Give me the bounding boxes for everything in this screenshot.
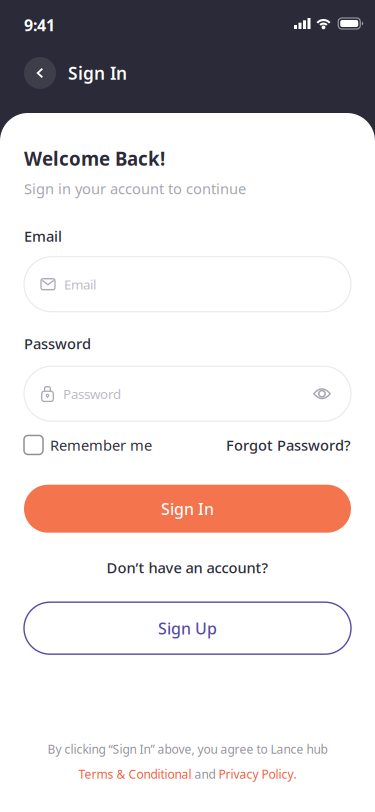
staticText: Password: [24, 334, 91, 353]
button[interactable]: Sign In: [24, 485, 351, 533]
staticText: 9:41: [24, 14, 55, 36]
staticText: Terms & Conditional: [78, 766, 191, 782]
staticText: Email: [64, 275, 96, 293]
button[interactable]: Show password: [313, 388, 335, 400]
button[interactable]: Back: [24, 57, 56, 89]
button[interactable]: Remember me: [24, 435, 152, 455]
staticText: Sign Up: [158, 618, 217, 639]
staticText: By clicking “Sign In” above, you agree t…: [47, 741, 327, 757]
staticText: Forgot Password?: [226, 435, 351, 455]
staticText: Remember me: [50, 435, 152, 455]
staticText: Email: [24, 226, 62, 246]
staticText: Welcome Back!: [24, 146, 165, 171]
staticText: and: [194, 766, 215, 782]
staticText: Sign in your account to continue: [24, 179, 246, 198]
staticText: Don’t have an account?: [106, 558, 268, 577]
staticText: Sign In: [68, 61, 127, 84]
staticText: Privacy Policy.: [218, 766, 296, 782]
button[interactable]: Forgot Password?: [226, 435, 351, 455]
staticText: Sign In: [161, 498, 214, 519]
button[interactable]: Privacy Policy.: [218, 766, 296, 782]
staticText: Password: [63, 385, 121, 403]
button[interactable]: Sign Up: [24, 602, 351, 654]
button[interactable]: Terms & Conditional: [78, 766, 191, 782]
